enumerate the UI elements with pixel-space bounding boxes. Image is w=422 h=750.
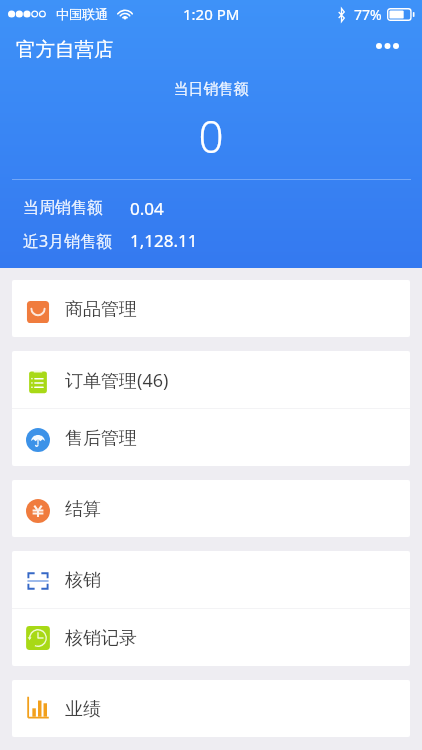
staticText: 业绩 [65, 698, 101, 721]
button[interactable]: 结算 [12, 480, 410, 537]
button[interactable]: 核销 [12, 551, 410, 608]
staticText: 结算 [65, 498, 101, 521]
staticText: 77% [354, 5, 382, 24]
staticText: 0 [0, 106, 422, 166]
staticText: 1:20 PM [183, 4, 240, 24]
button[interactable]: 核销记录 [12, 609, 410, 666]
button[interactable]: 商品管理 [12, 280, 410, 337]
staticText: 当周销售额 [23, 198, 103, 218]
staticText: 核销记录 [65, 627, 137, 650]
button[interactable]: 业绩 [12, 680, 410, 737]
staticText: 售后管理 [65, 427, 137, 450]
staticText: 订单管理(46) [65, 368, 169, 393]
staticText: 商品管理 [65, 298, 137, 321]
button[interactable]: 订单管理(46) [12, 351, 410, 408]
staticText: 0.04 [130, 197, 164, 220]
staticText: 官方自营店 [16, 37, 114, 62]
staticText: 当日销售额 [0, 80, 422, 99]
staticText: 中国联通 [56, 6, 108, 22]
button[interactable]: 售后管理 [12, 409, 410, 466]
staticText: 近3月销售额 [23, 230, 113, 252]
staticText: 1,128.11 [130, 229, 198, 252]
staticText: 核销 [65, 569, 101, 592]
button[interactable]: More options [364, 28, 408, 64]
